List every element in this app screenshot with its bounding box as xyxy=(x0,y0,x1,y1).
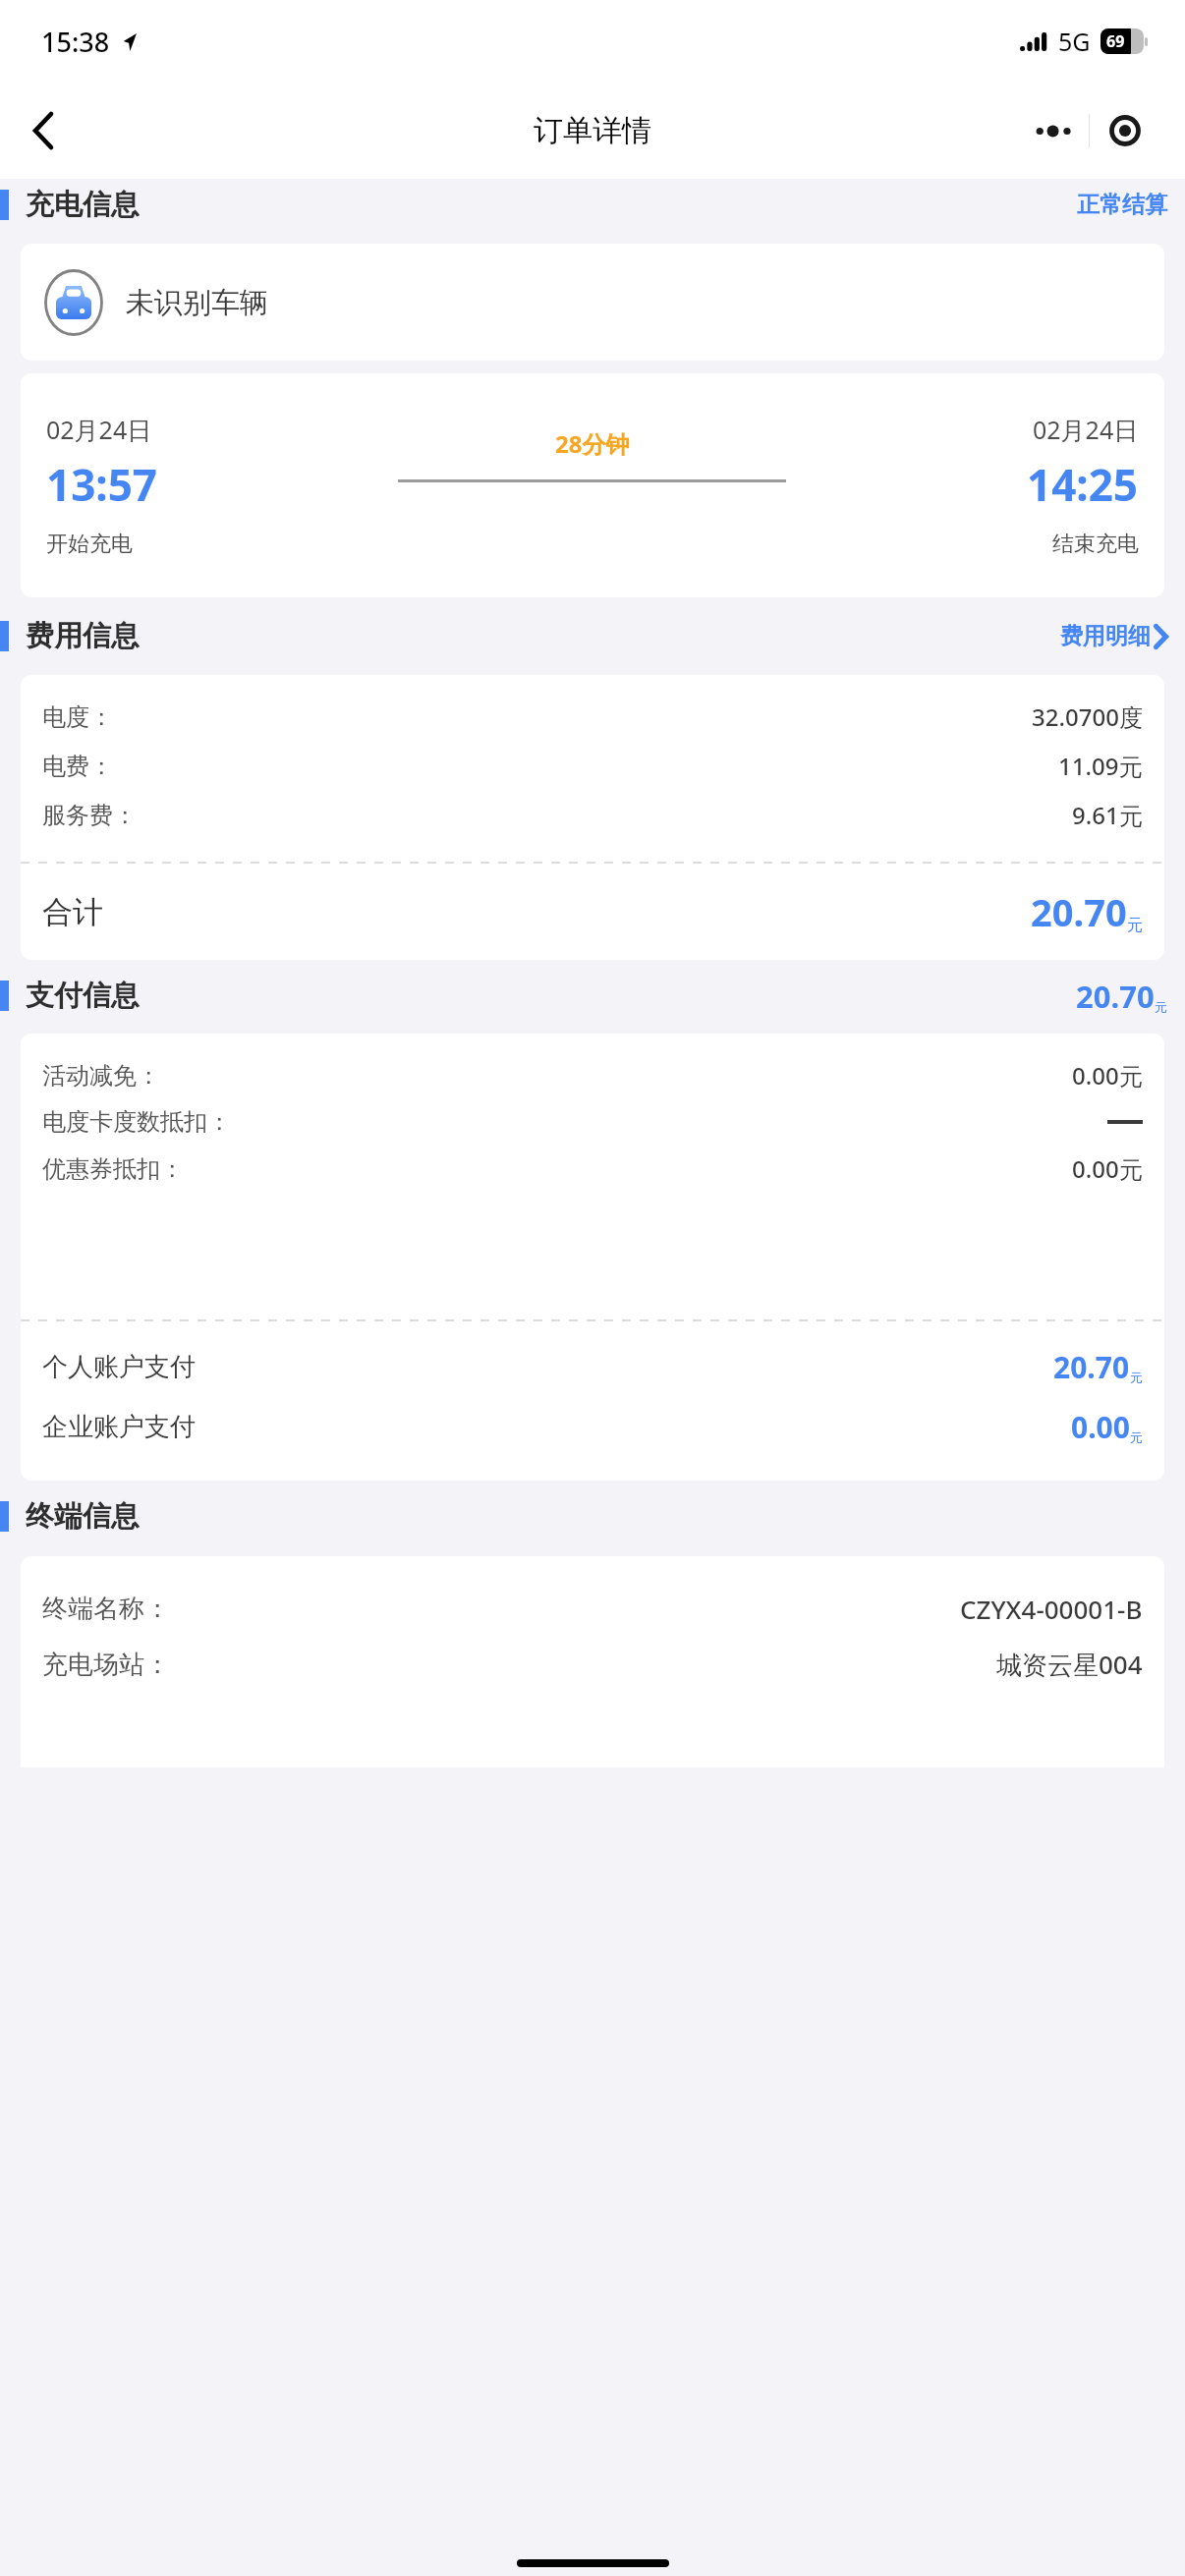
staticText: 充电场站： xyxy=(42,1649,170,1681)
staticText: 69 xyxy=(1106,30,1125,52)
button[interactable]: 未识别车辆 xyxy=(21,244,1164,361)
staticText: 元 xyxy=(1127,916,1143,935)
staticText: 20.70 xyxy=(1031,886,1127,937)
staticText: 5G xyxy=(1058,25,1091,58)
staticText: 结束充电 xyxy=(1052,531,1139,558)
staticText: 费用信息 xyxy=(26,618,140,654)
staticText: 20.70 xyxy=(1053,1347,1130,1387)
staticText: 支付信息 xyxy=(26,978,140,1014)
staticText: 电度： xyxy=(42,702,113,732)
staticText: 13:57 xyxy=(46,455,158,514)
staticText: 28分钟 xyxy=(555,427,630,460)
staticText: 开始充电 xyxy=(46,531,133,558)
staticText: 32.0700度 xyxy=(1032,700,1143,733)
staticText: 元 xyxy=(1155,999,1167,1015)
staticText: 02月24日 xyxy=(46,413,152,446)
staticText: 14:25 xyxy=(1027,455,1139,514)
staticText: 订单详情 xyxy=(534,112,651,149)
staticText: 正常结算 xyxy=(1077,191,1167,219)
staticText: 电度卡度数抵扣： xyxy=(42,1107,231,1137)
button[interactable]: Back xyxy=(14,101,73,160)
staticText: 服务费： xyxy=(42,801,137,830)
staticText: 02月24日 xyxy=(1033,413,1139,446)
button[interactable]: More options xyxy=(1020,105,1089,156)
staticText: 电费： xyxy=(42,752,113,781)
staticText: 0.00元 xyxy=(1072,1059,1143,1092)
staticText: 11.09元 xyxy=(1058,750,1143,782)
staticText: 个人账户支付 xyxy=(42,1351,196,1383)
staticText: 费用明细 xyxy=(1060,622,1151,650)
staticText: 元 xyxy=(1130,1370,1143,1385)
staticText: 企业账户支付 xyxy=(42,1411,196,1443)
staticText: 0.00 xyxy=(1071,1407,1130,1447)
button[interactable]: 费用明细 xyxy=(1060,622,1167,650)
staticText: 优惠券抵扣： xyxy=(42,1154,184,1184)
staticText: 充电信息 xyxy=(26,187,140,223)
staticText: 9.61元 xyxy=(1072,799,1143,831)
staticText: 20.70 xyxy=(1076,976,1155,1017)
staticText: 元 xyxy=(1130,1429,1143,1445)
staticText: 合计 xyxy=(42,893,103,931)
staticText: CZYX4-00001-B xyxy=(960,1592,1143,1626)
staticText: 0.00元 xyxy=(1072,1152,1143,1185)
staticText: 终端名称： xyxy=(42,1593,170,1625)
staticText: 未识别车辆 xyxy=(126,285,268,321)
staticText: 终端信息 xyxy=(26,1498,140,1535)
staticText: 活动减免： xyxy=(42,1061,160,1091)
button[interactable]: Close xyxy=(1090,105,1159,156)
staticText: 城资云星004 xyxy=(996,1647,1143,1682)
staticText: 15:38 xyxy=(41,24,110,60)
